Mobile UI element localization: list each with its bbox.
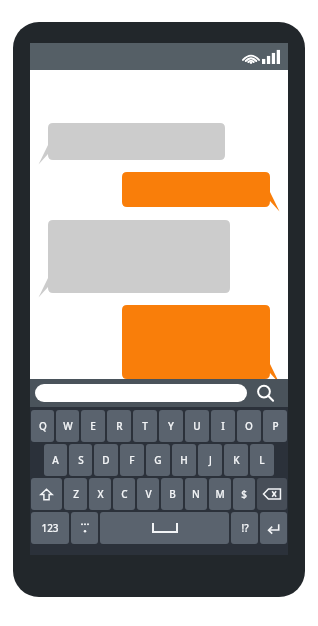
button[interactable]: D [94, 444, 118, 476]
button[interactable]: K [224, 444, 248, 476]
button[interactable] [122, 305, 280, 379]
staticText: M [215, 487, 225, 501]
staticText: L [259, 453, 265, 467]
button[interactable]: I [211, 410, 235, 442]
button[interactable]: T [133, 410, 157, 442]
button[interactable]: W [56, 410, 79, 442]
button[interactable]: V [137, 478, 159, 510]
staticText: G [154, 453, 162, 467]
button[interactable]: R [107, 410, 131, 442]
button[interactable]: U [185, 410, 209, 442]
button[interactable] [38, 123, 225, 160]
button[interactable]: L [250, 444, 274, 476]
button[interactable]: H [172, 444, 196, 476]
staticText: K [233, 453, 240, 467]
button[interactable]: O [237, 410, 261, 442]
button[interactable] [122, 172, 280, 207]
staticText: D [102, 453, 110, 467]
staticText: U [193, 419, 201, 433]
button[interactable]: B [161, 478, 183, 510]
button[interactable]: Y [159, 410, 183, 442]
button[interactable]: C [113, 478, 135, 510]
button[interactable]: P [263, 410, 287, 442]
button[interactable]: Enter [260, 512, 287, 544]
button[interactable]: S [69, 444, 92, 476]
staticText: A [52, 453, 59, 467]
staticText: E [90, 419, 96, 433]
staticText: S [78, 453, 84, 467]
staticText: !? [241, 521, 249, 535]
staticText: O [245, 419, 253, 433]
button[interactable]: E [81, 410, 105, 442]
button[interactable]: M [209, 478, 231, 510]
button[interactable]: G [146, 444, 170, 476]
staticText: J [209, 453, 212, 467]
staticText: H [180, 453, 188, 467]
staticText: T [142, 419, 148, 433]
staticText: $ [241, 487, 247, 501]
button[interactable] [35, 384, 247, 402]
staticText: W [63, 419, 73, 433]
staticText: X [97, 487, 104, 501]
staticText: I [221, 419, 225, 433]
staticText: 123 [41, 521, 59, 535]
button[interactable] [38, 220, 230, 293]
button[interactable]: Search [247, 379, 283, 407]
staticText: Q [39, 419, 47, 433]
staticText: Y [168, 419, 174, 433]
button[interactable]: F [120, 444, 144, 476]
staticText: B [169, 487, 176, 501]
staticText: N [192, 487, 200, 501]
button[interactable]: Symbols [71, 512, 98, 544]
staticText: V [145, 487, 152, 501]
button[interactable]: !? [231, 512, 258, 544]
staticText: R [116, 419, 123, 433]
button[interactable]: X [89, 478, 111, 510]
button[interactable]: $ [233, 478, 255, 510]
button[interactable]: Q [31, 410, 54, 442]
button[interactable]: J [198, 444, 222, 476]
button[interactable]: Space [100, 512, 229, 544]
button[interactable]: Z [64, 478, 87, 510]
button[interactable]: N [185, 478, 207, 510]
staticText: Z [73, 487, 79, 501]
button[interactable]: 123 [31, 512, 69, 544]
staticText: P [272, 419, 279, 433]
button[interactable]: Shift [31, 478, 62, 510]
button[interactable] [257, 478, 287, 510]
staticText: C [121, 487, 128, 501]
staticText: F [129, 453, 135, 467]
button[interactable]: A [44, 444, 67, 476]
